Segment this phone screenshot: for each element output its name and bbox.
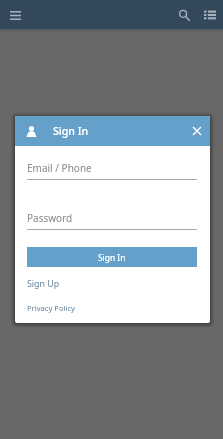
staticText: Password: [27, 211, 73, 225]
button[interactable]: List view: [197, 2, 223, 28]
button[interactable]: Search: [171, 2, 197, 28]
button[interactable]: Close: [184, 118, 210, 144]
button[interactable]: Privacy Policy: [27, 300, 75, 313]
staticText: Sign Up: [27, 278, 60, 290]
staticText: Email / Phone: [27, 161, 92, 175]
staticText: Privacy Policy: [27, 303, 75, 313]
button[interactable]: Sign Up: [27, 276, 60, 290]
button[interactable]: Menu: [2, 2, 28, 28]
staticText: Sign In: [98, 252, 126, 263]
staticText: Sign In: [53, 124, 89, 138]
button[interactable]: Sign In: [27, 247, 197, 267]
